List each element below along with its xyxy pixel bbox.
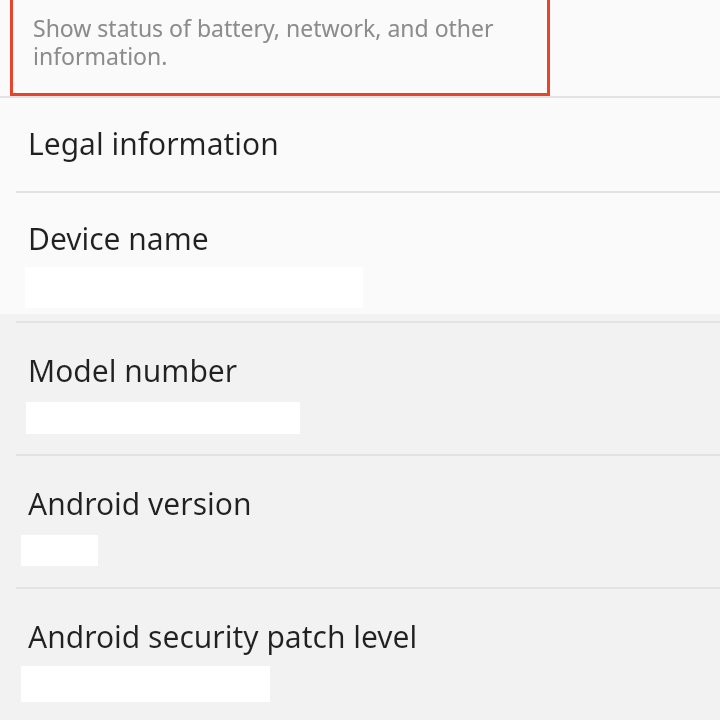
staticText: Legal information <box>28 123 279 164</box>
staticText: Android security patch level <box>28 616 418 657</box>
staticText: Model number <box>28 350 238 391</box>
button[interactable]: Show status of battery, network, and oth… <box>0 0 720 96</box>
staticText: Device name <box>28 218 209 259</box>
staticText: Android version <box>28 483 252 524</box>
staticText: Show status of battery, network, and oth… <box>33 12 494 72</box>
button[interactable]: Android version <box>0 456 720 587</box>
button[interactable]: Legal information <box>0 98 720 191</box>
button[interactable]: Android security patch level <box>0 589 720 720</box>
button[interactable]: Model number <box>0 323 720 454</box>
button[interactable]: Device name <box>0 193 720 321</box>
